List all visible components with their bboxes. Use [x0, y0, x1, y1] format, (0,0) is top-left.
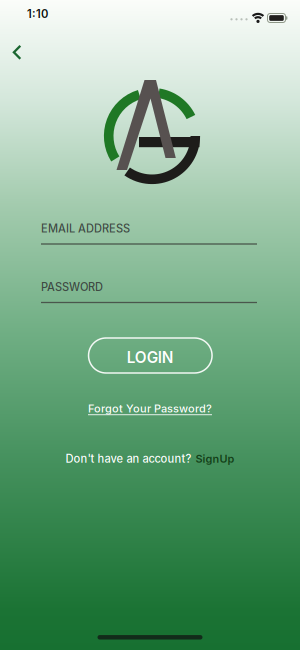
button[interactable]: [4, 39, 30, 65]
button[interactable]: EMAIL ADDRESS: [41, 220, 257, 245]
staticText: LOGIN: [127, 348, 174, 367]
button[interactable]: PASSWORD: [41, 279, 257, 303]
staticText: PASSWORD: [41, 280, 103, 294]
staticText: SignUp: [195, 452, 234, 465]
staticText: Forgot Your Password?: [88, 402, 212, 415]
button[interactable]: LOGIN: [89, 338, 212, 373]
button[interactable]: Forgot Your Password?: [88, 402, 212, 415]
button[interactable]: SignUp: [195, 452, 234, 465]
staticText: Don't have an account?: [65, 452, 191, 465]
staticText: 1:10: [27, 7, 48, 21]
staticText: EMAIL ADDRESS: [41, 222, 130, 235]
